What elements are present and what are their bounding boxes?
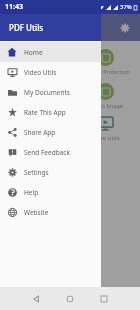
button[interactable]: Home xyxy=(62,291,78,307)
staticText: Home xyxy=(24,48,43,57)
staticText: Video Utils xyxy=(24,68,57,77)
staticText: My Documents xyxy=(24,88,70,97)
staticText: PDF to Image xyxy=(88,102,123,109)
staticText: Rate This App xyxy=(24,108,66,117)
staticText: Remove Protection xyxy=(81,68,130,75)
staticText: Help xyxy=(24,188,39,197)
staticText: Website xyxy=(24,208,49,217)
staticText: PDF Utils xyxy=(9,22,44,33)
staticText: Share App xyxy=(24,128,56,137)
button[interactable]: Web to PDF xyxy=(0,80,70,112)
staticText: Video utils xyxy=(90,134,120,142)
button[interactable]: Rate This App xyxy=(0,102,101,122)
button[interactable]: Send Feedback xyxy=(0,142,101,162)
button[interactable]: Back xyxy=(28,291,44,307)
staticText: 11:43 xyxy=(5,2,23,12)
button[interactable]: Settings xyxy=(116,19,134,37)
button[interactable]: My Documents xyxy=(0,82,101,102)
staticText: Extract Images xyxy=(16,68,55,75)
staticText: Send Feedback xyxy=(24,148,70,157)
button[interactable]: Website xyxy=(0,202,101,222)
button[interactable]: PDF to Image xyxy=(70,80,140,112)
button[interactable]: Remove Protection xyxy=(70,46,140,78)
button[interactable]: Home xyxy=(0,42,101,62)
staticText: 11:43 xyxy=(5,2,23,12)
button[interactable]: Help xyxy=(0,182,101,202)
button[interactable]: Extract Images xyxy=(0,46,70,78)
button[interactable]: Video Utils xyxy=(0,62,101,82)
button[interactable]: Share App xyxy=(0,122,101,142)
button[interactable]: Recents xyxy=(96,291,112,307)
staticText: Settings xyxy=(24,168,49,177)
button[interactable]: Settings xyxy=(0,162,101,182)
staticText: PDF Utils xyxy=(9,22,44,33)
staticText: 37% xyxy=(120,3,132,11)
